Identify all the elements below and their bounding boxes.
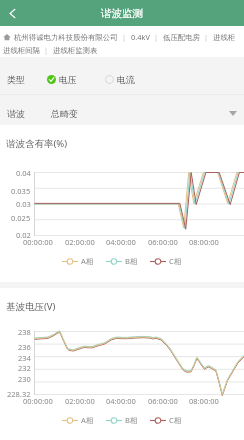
- staticText: 02:00:00: [65, 396, 95, 405]
- staticText: C相: [169, 415, 182, 425]
- staticText: B相: [125, 256, 138, 266]
- staticText: 04:00:00: [106, 396, 136, 405]
- button[interactable]: B相: [106, 256, 138, 266]
- staticText: |: [122, 32, 127, 42]
- staticText: A相: [81, 256, 94, 266]
- button[interactable]: A相: [62, 415, 94, 425]
- staticText: 0.025: [11, 213, 31, 223]
- button[interactable]: C相: [150, 256, 182, 266]
- staticText: 电流: [117, 74, 135, 85]
- button[interactable]: B相: [106, 415, 138, 425]
- button[interactable]: 低压配电房: [163, 33, 200, 42]
- staticText: 谐波: [7, 108, 51, 119]
- staticText: 谐波监测: [101, 7, 143, 20]
- staticText: 230: [18, 374, 31, 384]
- button[interactable]: 进线柜监测表: [53, 46, 98, 55]
- button[interactable]: C相: [150, 415, 182, 425]
- button[interactable]: 进线柜: [213, 33, 236, 42]
- button[interactable]: 进线柜间隔: [3, 46, 40, 55]
- staticText: 谐波含有率(%): [6, 137, 68, 150]
- staticText: 类型: [7, 74, 47, 85]
- staticText: |: [154, 32, 159, 42]
- staticText: 06:00:00: [148, 396, 178, 405]
- button[interactable]: 电流: [105, 70, 135, 89]
- button[interactable]: 电压: [47, 70, 77, 89]
- staticText: 06:00:00: [148, 237, 178, 246]
- staticText: 0.02: [16, 230, 31, 240]
- staticText: C相: [169, 256, 182, 266]
- button[interactable]: 杭州得诚电力科技股份有限公司: [14, 33, 118, 42]
- staticText: |: [204, 32, 209, 42]
- staticText: 234: [18, 353, 31, 363]
- staticText: 228.32: [7, 389, 31, 399]
- staticText: 02:00:00: [65, 237, 95, 246]
- staticText: 00:00:00: [23, 237, 53, 246]
- button[interactable]: 0.4kV: [131, 32, 150, 42]
- staticText: 0.03: [16, 199, 31, 209]
- staticText: 04:00:00: [106, 237, 136, 246]
- button[interactable]: Back: [0, 1, 24, 25]
- staticText: 基波电压(V): [6, 300, 56, 313]
- staticText: 08:00:00: [189, 237, 219, 246]
- staticText: 00:00:00: [23, 396, 53, 405]
- staticText: |: [44, 45, 49, 55]
- staticText: 232: [18, 363, 31, 373]
- staticText: 0.04: [16, 168, 31, 178]
- staticText: 0.035: [11, 186, 31, 196]
- staticText: 236: [18, 342, 31, 352]
- staticText: 238: [18, 327, 31, 337]
- button[interactable]: 谐波: [7, 98, 237, 128]
- staticText: 电压: [59, 74, 77, 85]
- staticText: B相: [125, 415, 138, 425]
- staticText: 总畸变: [51, 108, 78, 119]
- button[interactable]: A相: [62, 256, 94, 266]
- staticText: A相: [81, 415, 94, 425]
- staticText: 08:00:00: [189, 396, 219, 405]
